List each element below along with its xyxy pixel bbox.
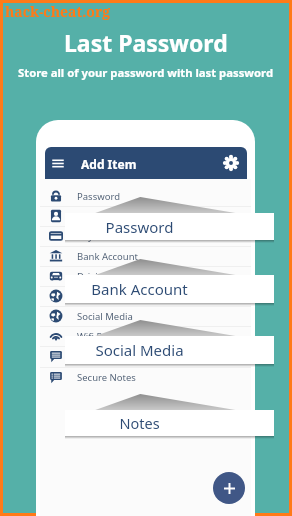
staticText: Payment Cards [77,230,145,243]
staticText: Bank Account [77,250,139,263]
button[interactable]: Password [40,186,251,206]
staticText: Add Item [81,156,137,172]
staticText: Password [77,190,120,203]
button[interactable]: Social Media [40,306,251,326]
staticText: Driving License [77,270,145,283]
staticText: Wifi Password [77,330,140,343]
button[interactable]: Bank Account [65,275,274,303]
button[interactable]: Notes [65,410,274,436]
button[interactable]: Driving License [40,266,251,286]
staticText: Identity [77,210,112,223]
button[interactable]: Identity [40,206,251,226]
staticText: hack-cheat.org [5,2,111,21]
button[interactable]: Settings [223,155,239,171]
staticText: Notes [77,350,104,363]
button[interactable]: Bank Account [40,246,251,266]
button[interactable]: Add [213,472,245,504]
staticText: Last Password [64,27,228,58]
staticText: Store all of your password with last pas… [18,65,274,80]
button[interactable]: Password [65,213,274,240]
staticText: Notes [65,413,214,433]
staticText: Social Media [77,310,133,323]
staticText: Bank Account [65,279,214,299]
button[interactable]: Menu [50,155,66,171]
button[interactable]: Notes [40,346,251,366]
button[interactable]: Secure Notes [40,367,251,387]
button[interactable]: Payment Cards [40,226,251,246]
button[interactable]: Passport [40,286,251,306]
staticText: Password [65,217,214,237]
button[interactable]: Social Media [65,336,274,364]
button[interactable]: Wifi Password [40,326,251,346]
staticText: Social Media [65,340,214,360]
button[interactable]: Menu [45,147,247,179]
staticText: Secure Notes [77,371,136,384]
staticText: Passport [77,290,117,303]
